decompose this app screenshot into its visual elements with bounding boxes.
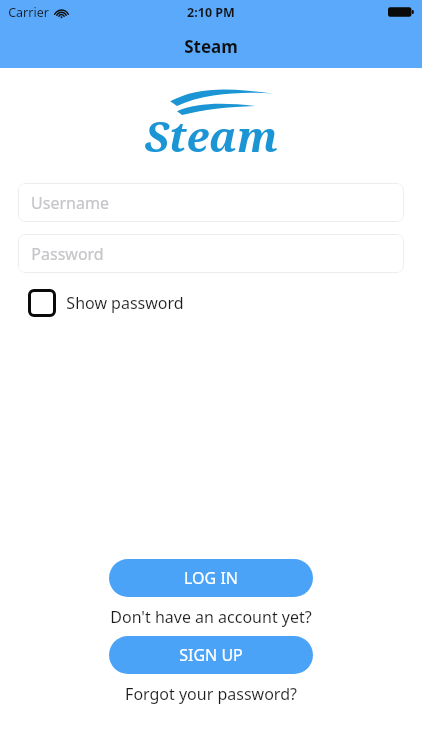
staticText: Forgot your password? bbox=[125, 683, 297, 705]
staticText: 2:10 PM bbox=[187, 4, 235, 21]
staticText: Steam bbox=[144, 107, 278, 161]
button[interactable]: Username bbox=[18, 183, 404, 222]
button[interactable]: Password bbox=[18, 234, 404, 273]
staticText: Show password bbox=[66, 292, 184, 314]
staticText: Don't have an account yet? bbox=[110, 606, 312, 628]
staticText: LOG IN bbox=[184, 567, 238, 589]
staticText: Password bbox=[31, 243, 104, 265]
staticText: Carrier bbox=[8, 4, 49, 21]
staticText: SIGN UP bbox=[179, 644, 243, 666]
staticText: Username bbox=[31, 192, 109, 214]
button[interactable]: LOG IN bbox=[109, 559, 313, 597]
other: Steam logo bbox=[126, 85, 296, 161]
button[interactable]: Show password bbox=[26, 287, 186, 319]
button[interactable]: Don't have an account yet? bbox=[108, 604, 314, 630]
staticText: Steam bbox=[184, 35, 238, 58]
button[interactable]: Forgot your password? bbox=[123, 681, 299, 707]
button[interactable]: SIGN UP bbox=[109, 636, 313, 674]
